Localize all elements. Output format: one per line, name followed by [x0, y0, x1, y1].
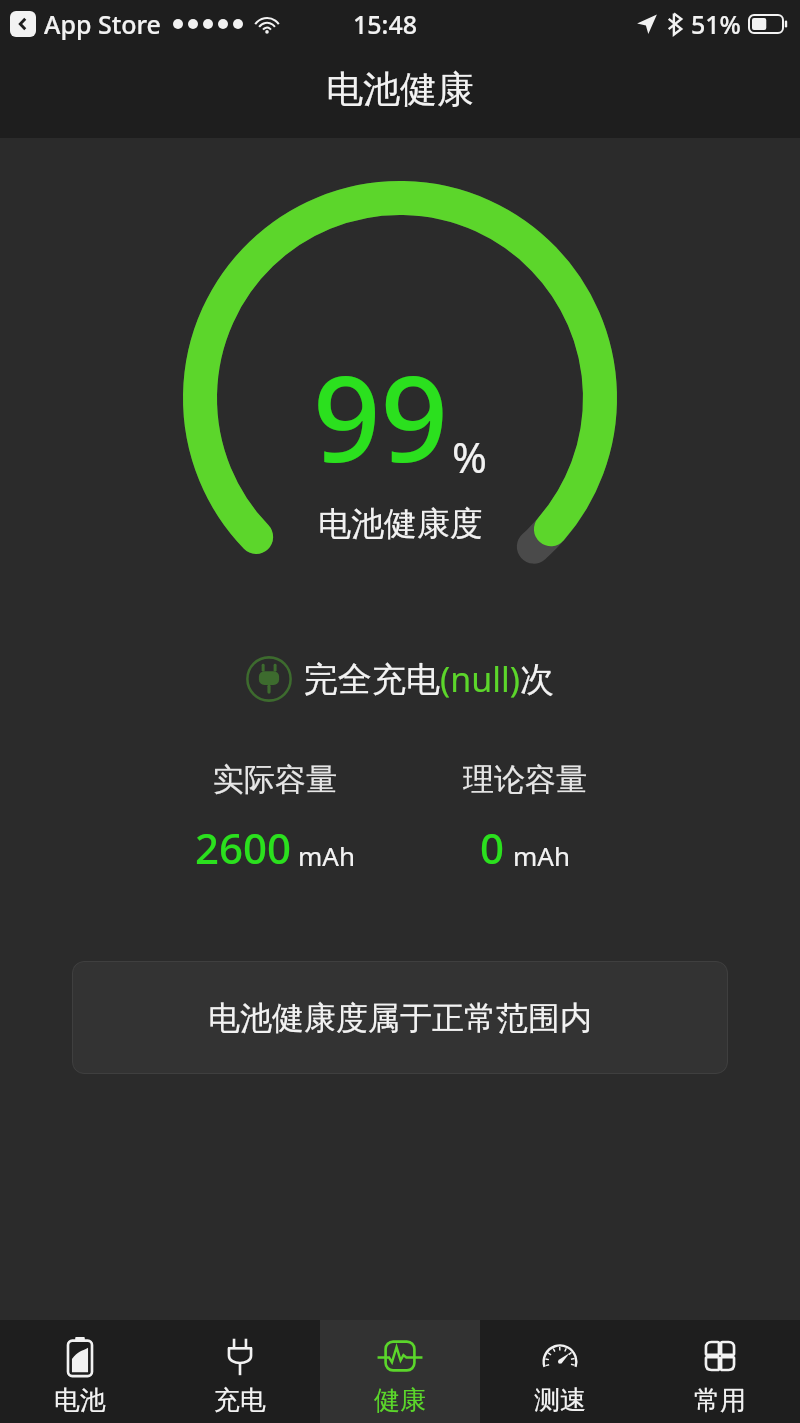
staticText: 0 [480, 819, 505, 876]
staticText: mAh [298, 838, 355, 873]
staticText: 次 [520, 658, 554, 701]
staticText: 健康 [374, 1384, 426, 1417]
button[interactable]: 充电 [160, 1320, 320, 1423]
staticText: 99 [313, 336, 448, 497]
staticText: (null) [440, 656, 520, 702]
staticText: 常用 [694, 1384, 746, 1417]
staticText: App Store [44, 7, 161, 41]
staticText: 完全充电 [304, 658, 440, 701]
button[interactable]: 测速 [480, 1320, 640, 1423]
staticText: 充电 [214, 1384, 266, 1417]
button[interactable]: 电池健康度属于正常范围内 [72, 961, 728, 1074]
staticText: 51% [691, 7, 741, 41]
staticText: 理论容量 [463, 760, 587, 799]
button[interactable]: 健康 [320, 1320, 480, 1423]
staticText: mAh [513, 838, 570, 873]
staticText: 电池健康度 [318, 503, 483, 545]
button[interactable]: 常用 [640, 1320, 800, 1423]
staticText: 2600 [195, 819, 292, 876]
staticText: 15:48 [353, 7, 418, 41]
staticText: 实际容量 [213, 760, 337, 799]
staticText: 电池 [54, 1384, 106, 1417]
button[interactable]: 电池 [0, 1320, 160, 1423]
staticText: 电池健康 [326, 66, 474, 113]
staticText: % [452, 428, 487, 485]
staticText: 电池健康度属于正常范围内 [208, 998, 592, 1038]
staticText: 测速 [534, 1384, 586, 1417]
button[interactable]: Back to App Store [10, 11, 36, 37]
